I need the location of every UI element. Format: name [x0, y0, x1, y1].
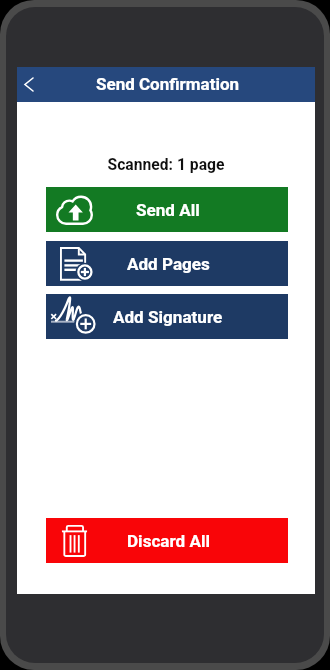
staticText: Scanned: 1 page — [17, 155, 315, 173]
staticText: Send Confirmation — [96, 74, 240, 94]
staticText: Add Signature — [113, 307, 223, 327]
button[interactable]: Add Signature — [46, 294, 288, 339]
button[interactable]: Discard All — [46, 518, 288, 563]
staticText: Discard All — [127, 531, 210, 551]
button[interactable]: Back — [17, 70, 47, 100]
staticText: Add Pages — [127, 254, 210, 274]
staticText: Send All — [136, 200, 200, 220]
button[interactable]: Add Pages — [46, 241, 288, 286]
button[interactable]: Send All — [46, 187, 288, 232]
